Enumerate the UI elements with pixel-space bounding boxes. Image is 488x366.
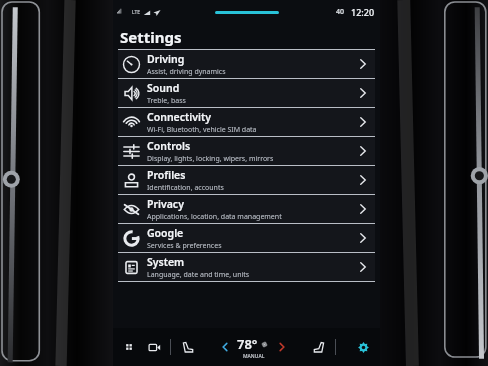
- staticText: Controls: [147, 139, 191, 153]
- staticText: Connectivity: [147, 110, 211, 124]
- button[interactable]: Controls: [118, 137, 375, 165]
- staticText: System: [147, 255, 185, 269]
- staticText: Profiles: [147, 168, 186, 182]
- staticText: 12:20: [351, 6, 375, 18]
- button[interactable]: Passenger seat heater: [308, 337, 328, 357]
- staticText: 40: [336, 7, 345, 17]
- staticText: Wi-Fi, Bluetooth, vehicle SIM data: [147, 125, 257, 135]
- staticText: Services & preferences: [147, 241, 222, 251]
- staticText: Driving: [147, 52, 185, 66]
- staticText: Display, lights, locking, wipers, mirror…: [147, 154, 274, 164]
- staticText: Assist, driving dynamics: [147, 67, 226, 77]
- staticText: LTE: [132, 9, 141, 16]
- button[interactable]: Google: [118, 224, 375, 252]
- button[interactable]: Decrease temperature: [215, 337, 235, 357]
- button[interactable]: Increase temperature: [272, 337, 292, 357]
- button[interactable]: Driver seat heater: [178, 337, 198, 357]
- button[interactable]: Connectivity: [118, 108, 375, 136]
- button[interactable]: Apps: [119, 337, 139, 357]
- button[interactable]: Driving: [118, 50, 375, 78]
- button[interactable]: Privacy: [118, 195, 375, 223]
- button[interactable]: Camera: [144, 337, 164, 357]
- staticText: Identification, accounts: [147, 183, 224, 193]
- staticText: Sound: [147, 81, 180, 95]
- staticText: Privacy: [147, 197, 184, 211]
- staticText: Google: [147, 226, 184, 240]
- staticText: Language, date and time, units: [147, 270, 250, 280]
- staticText: Settings: [120, 27, 182, 47]
- button[interactable]: Profiles: [118, 166, 375, 194]
- staticText: Treble, bass: [147, 96, 186, 106]
- staticText: Applications, location, data management: [147, 212, 282, 222]
- staticText: MANUAL: [243, 353, 265, 360]
- button[interactable]: Settings: [352, 336, 374, 358]
- staticText: 78°: [237, 335, 258, 353]
- button[interactable]: 78°: [237, 335, 270, 360]
- button[interactable]: System: [118, 253, 375, 281]
- button[interactable]: Sound: [118, 79, 375, 107]
